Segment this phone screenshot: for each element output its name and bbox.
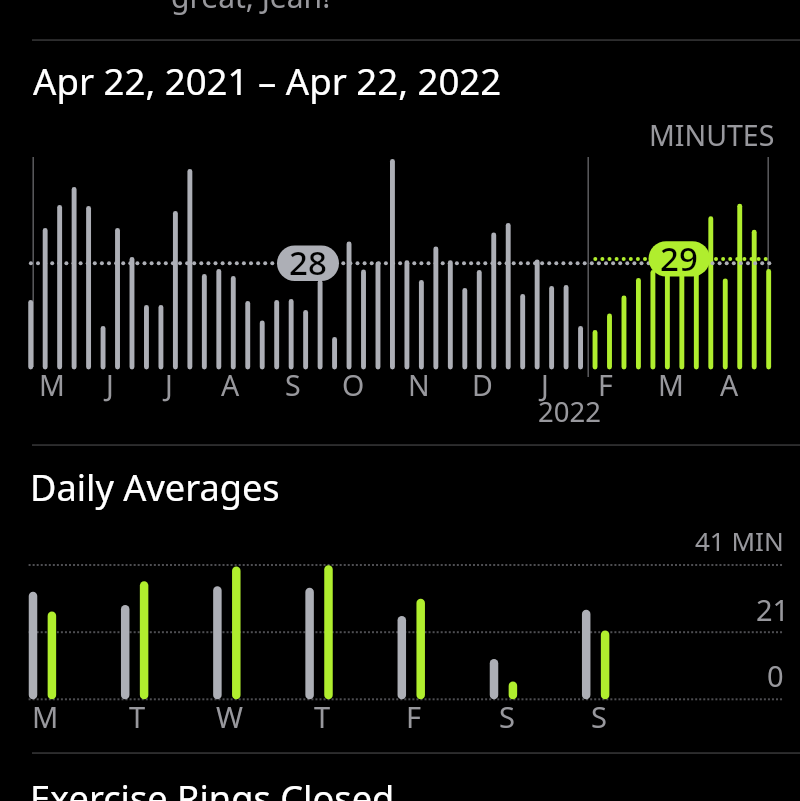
staticText: Daily Averages — [30, 462, 280, 511]
staticText: T — [129, 697, 146, 736]
staticText: MINUTES — [649, 116, 775, 155]
staticText: J — [106, 366, 114, 405]
staticText: 41 MIN — [695, 523, 784, 558]
staticText: 21 — [756, 590, 790, 629]
staticText: M — [658, 366, 684, 405]
staticText: J — [541, 366, 549, 405]
button[interactable]: Daily Averages — [0, 446, 800, 752]
button[interactable]: Exercise minutes trend, Apr 22 2021 to A… — [0, 40, 800, 444]
staticText: 29 — [660, 236, 698, 281]
staticText: T — [314, 697, 331, 736]
staticText: J — [165, 366, 173, 405]
staticText: F — [598, 366, 613, 405]
staticText: O — [342, 366, 365, 405]
staticText: 28 — [289, 240, 327, 285]
staticText: Exercise Rings Closed — [30, 773, 395, 801]
staticText: M — [32, 697, 59, 736]
staticText: S — [499, 697, 515, 736]
staticText: 2022 — [538, 393, 601, 430]
staticText: D — [472, 366, 493, 405]
staticText: W — [216, 697, 243, 736]
staticText: 0 — [767, 656, 784, 695]
staticText: A — [221, 366, 240, 405]
staticText: N — [408, 366, 430, 405]
staticText: S — [591, 697, 607, 736]
staticText: F — [406, 697, 422, 736]
staticText: M — [39, 366, 65, 405]
staticText: great, Jean! — [171, 0, 331, 17]
staticText: S — [285, 366, 301, 405]
staticText: Apr 22, 2021 – Apr 22, 2022 — [33, 56, 502, 106]
staticText: A — [720, 366, 739, 405]
button[interactable]: Exercise Rings Closed — [0, 754, 800, 801]
